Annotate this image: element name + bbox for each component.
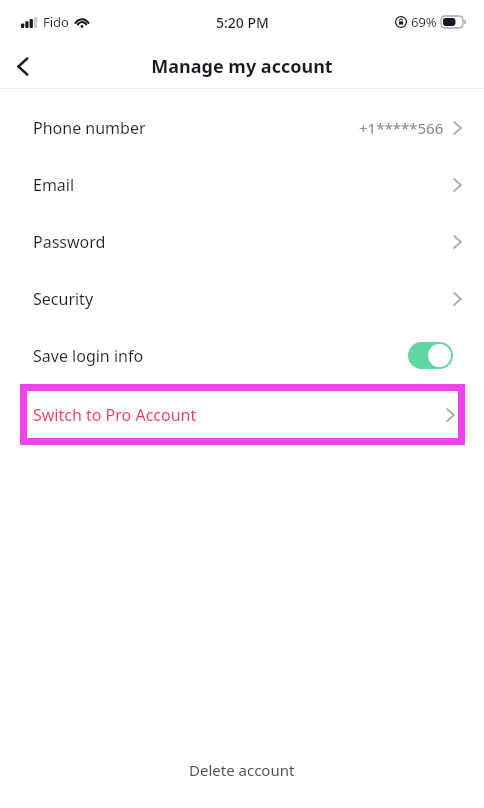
- staticText: +1*****566: [359, 118, 444, 138]
- staticText: Fido: [43, 13, 69, 31]
- staticText: Email: [33, 174, 75, 196]
- button[interactable]: Password: [0, 213, 484, 270]
- staticText: Delete account: [189, 760, 295, 780]
- button[interactable]: Phone number: [0, 99, 484, 156]
- button[interactable]: Email: [0, 156, 484, 213]
- staticText: 69%: [411, 13, 437, 31]
- staticText: Save login info: [33, 345, 144, 367]
- other: Save login info toggle: [408, 342, 453, 369]
- staticText: Switch to Pro Account: [33, 404, 197, 426]
- staticText: Password: [33, 231, 106, 253]
- staticText: Manage my account: [151, 54, 333, 79]
- button[interactable]: Back: [0, 44, 46, 88]
- staticText: Phone number: [33, 117, 146, 139]
- button[interactable]: Security: [0, 270, 484, 327]
- button[interactable]: Switch to Pro Account: [20, 384, 465, 445]
- staticText: Security: [33, 288, 94, 310]
- staticText: 5:20 PM: [216, 13, 269, 32]
- button[interactable]: Delete account: [0, 746, 484, 794]
- button[interactable]: Save login info: [0, 327, 484, 384]
